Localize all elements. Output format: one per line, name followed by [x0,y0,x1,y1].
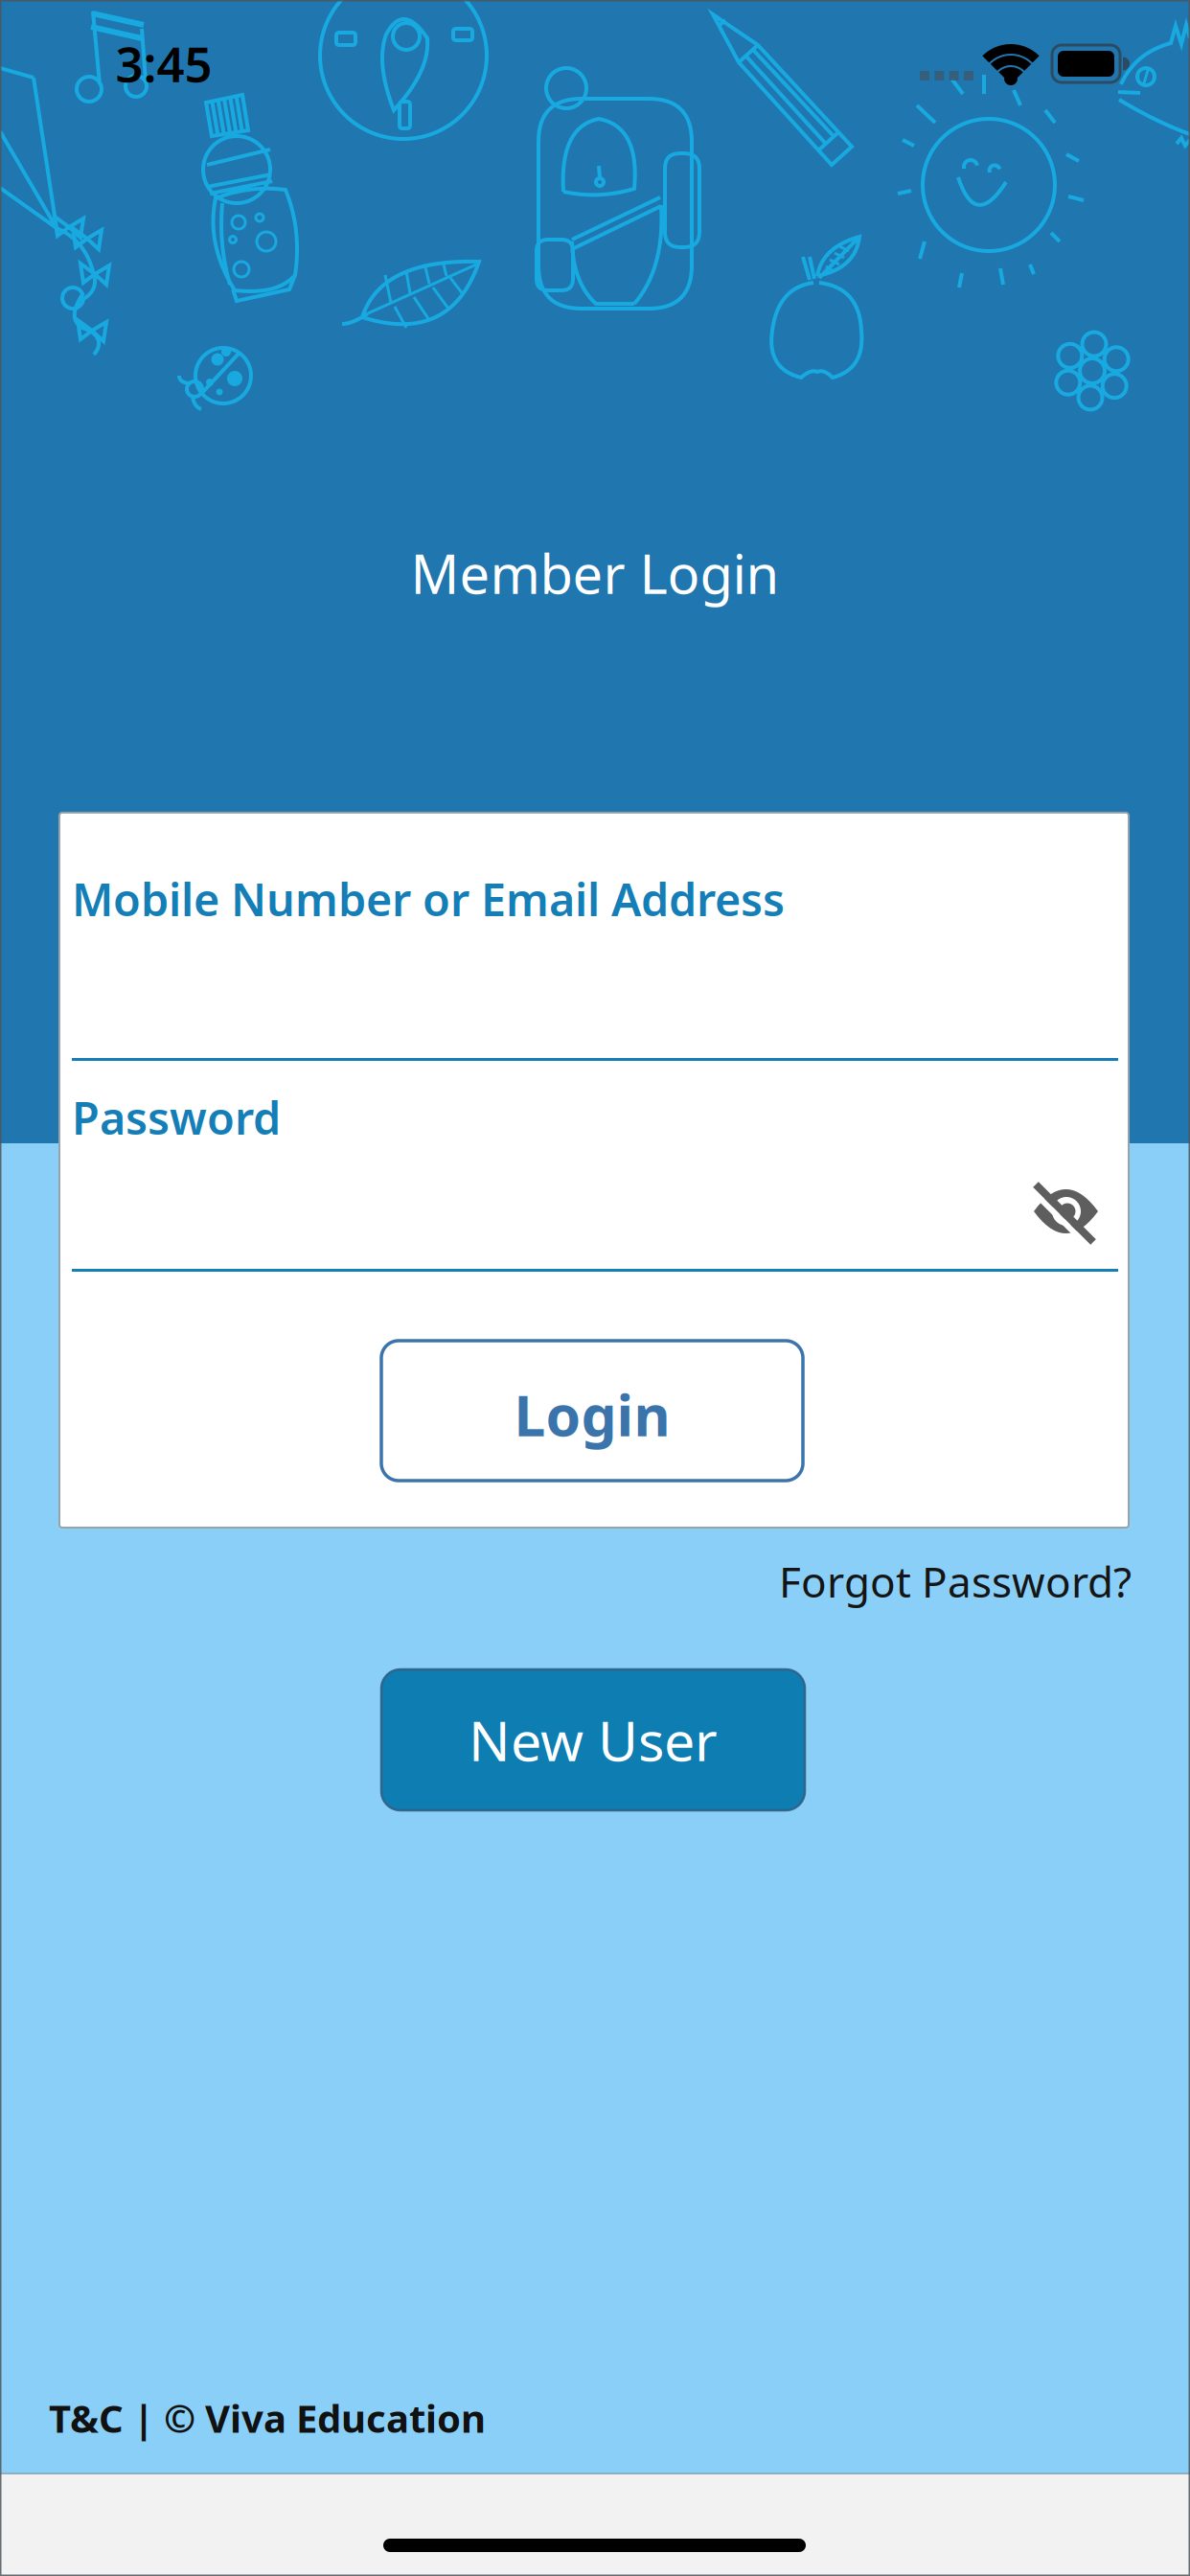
staticText: New User [469,1703,718,1776]
button[interactable]: Password [72,1088,1118,1272]
staticText: Login [514,1377,670,1452]
button[interactable]: Login [381,1341,803,1481]
button[interactable] [1022,1168,1109,1254]
staticText: Mobile Number or Email Address [72,869,785,929]
staticText: Forgot Password? [779,1553,1132,1609]
button[interactable]: T&C | © Viva Education [49,2392,486,2443]
button[interactable]: New User [381,1669,805,1810]
button[interactable]: Mobile Number or Email Address [72,869,1118,1061]
staticText: T&C | © Viva Education [49,2392,486,2443]
staticText: Password [72,1088,281,1147]
staticText: Member Login [411,537,779,609]
staticText: 3:45 [115,31,212,96]
button[interactable]: Forgot Password? [779,1553,1132,1609]
